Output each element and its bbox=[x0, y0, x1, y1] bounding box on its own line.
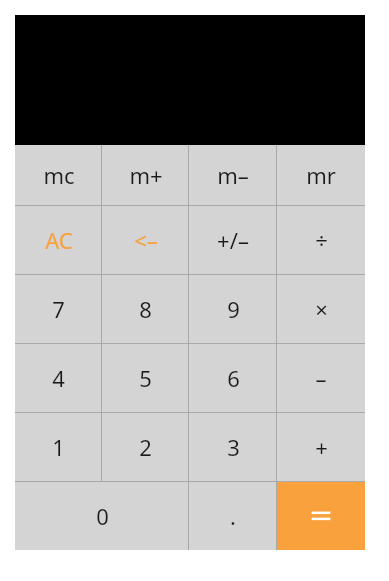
staticText: 7 bbox=[52, 294, 65, 324]
button[interactable]: Equals bbox=[277, 482, 365, 550]
button[interactable]: m– bbox=[189, 145, 277, 205]
staticText: 3 bbox=[227, 432, 240, 462]
button[interactable]: AC bbox=[15, 206, 102, 274]
staticText: <– bbox=[134, 225, 158, 255]
button[interactable]: 7 bbox=[15, 275, 102, 343]
staticText: 2 bbox=[139, 432, 152, 462]
staticText: AC bbox=[45, 225, 73, 255]
staticText: 4 bbox=[52, 363, 65, 393]
button[interactable]: 1 bbox=[15, 413, 102, 481]
staticText: m– bbox=[217, 160, 249, 190]
staticText: 6 bbox=[227, 363, 240, 393]
button[interactable]: + bbox=[277, 413, 365, 481]
button[interactable]: m+ bbox=[102, 145, 189, 205]
staticText: m+ bbox=[129, 160, 163, 190]
button[interactable]: mc bbox=[15, 145, 102, 205]
staticText: 9 bbox=[227, 294, 240, 324]
button[interactable]: 3 bbox=[189, 413, 277, 481]
button[interactable]: 9 bbox=[189, 275, 277, 343]
button[interactable]: mr bbox=[277, 145, 365, 205]
button[interactable]: 5 bbox=[102, 344, 189, 412]
button[interactable]: 4 bbox=[15, 344, 102, 412]
button[interactable]: – bbox=[277, 344, 365, 412]
staticText: mc bbox=[43, 160, 75, 190]
staticText: ÷ bbox=[315, 225, 328, 255]
staticText: mr bbox=[306, 160, 336, 190]
button[interactable]: × bbox=[277, 275, 365, 343]
button[interactable]: 6 bbox=[189, 344, 277, 412]
button[interactable]: Backspace bbox=[102, 206, 189, 274]
staticText: 0 bbox=[96, 501, 109, 531]
staticText: . bbox=[230, 501, 236, 531]
button[interactable]: 8 bbox=[102, 275, 189, 343]
staticText: – bbox=[315, 363, 327, 393]
button[interactable]: . bbox=[189, 482, 277, 550]
button[interactable]: 2 bbox=[102, 413, 189, 481]
staticText: 1 bbox=[52, 432, 65, 462]
staticText: 8 bbox=[139, 294, 152, 324]
staticText: × bbox=[315, 294, 328, 324]
staticText: 5 bbox=[139, 363, 152, 393]
button[interactable]: +/– bbox=[189, 206, 277, 274]
staticText: + bbox=[315, 432, 328, 462]
staticText: +/– bbox=[217, 225, 249, 255]
button[interactable]: ÷ bbox=[277, 206, 365, 274]
button[interactable]: 0 bbox=[15, 482, 189, 550]
